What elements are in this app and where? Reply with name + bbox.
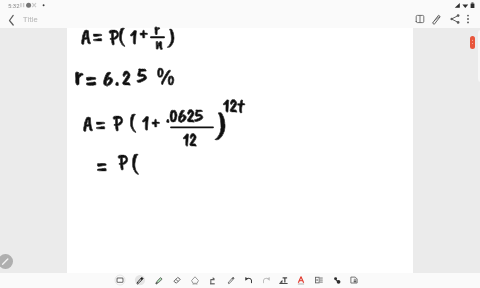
staticText: )	[168, 22, 176, 52]
staticText: r	[154, 18, 160, 39]
button[interactable]: Attach	[431, 13, 443, 25]
button[interactable]: Undo	[242, 273, 256, 287]
staticText: 2	[122, 65, 131, 91]
staticText: 2	[122, 65, 131, 91]
button[interactable]: Insert space	[113, 273, 127, 287]
staticText: r	[74, 58, 84, 92]
staticText: )	[216, 102, 227, 147]
staticText: (	[118, 23, 124, 49]
button[interactable]: Select shape	[188, 273, 202, 287]
button[interactable]: Shapes	[330, 273, 344, 287]
staticText: 5	[137, 62, 147, 90]
staticText: 1	[142, 110, 150, 136]
button[interactable]: More options	[462, 13, 474, 25]
button[interactable]: Page layout	[414, 13, 426, 25]
staticText: 12t	[223, 94, 245, 118]
staticText: +	[151, 111, 161, 134]
button[interactable]: Eraser	[170, 273, 184, 287]
staticText: =	[97, 149, 107, 181]
staticText: A	[83, 111, 93, 137]
staticText: +	[139, 22, 149, 45]
staticText: A	[81, 24, 91, 50]
staticText: =	[86, 61, 97, 95]
staticText: =	[86, 61, 97, 95]
staticText: .0625	[166, 104, 203, 128]
button[interactable]: Shape tool	[206, 273, 220, 287]
staticText: =	[96, 108, 106, 138]
staticText: n	[155, 31, 163, 54]
staticText: A	[83, 111, 93, 137]
staticText: n	[155, 31, 163, 54]
staticText: (	[118, 23, 124, 49]
staticText: P	[118, 149, 128, 175]
staticText: )	[216, 102, 227, 147]
staticText: .0625	[166, 104, 203, 128]
staticText: 12t	[223, 94, 245, 118]
staticText: =	[96, 108, 106, 138]
staticText: 1	[142, 110, 150, 136]
staticText: 6	[103, 65, 114, 93]
staticText: r	[74, 58, 84, 92]
button[interactable]: Pen 2	[224, 273, 238, 287]
button[interactable]: Text format	[277, 273, 291, 287]
staticText: 1	[130, 24, 138, 50]
button[interactable]: Insert	[312, 273, 326, 287]
staticText: A	[81, 24, 91, 50]
staticText: (	[131, 149, 138, 178]
staticText: +	[139, 22, 149, 45]
staticText: r	[154, 18, 160, 39]
button[interactable]: Lock	[347, 273, 361, 287]
staticText: .	[115, 65, 120, 91]
button[interactable]: Text colour	[294, 273, 308, 287]
staticText: P	[118, 149, 128, 175]
button[interactable]: Pen	[133, 273, 147, 287]
button[interactable]: Redo	[259, 273, 273, 287]
staticText: P	[109, 24, 119, 50]
staticText: 5	[137, 62, 147, 90]
staticText: P	[113, 110, 123, 136]
staticText: %	[156, 61, 176, 91]
button[interactable]: Back	[3, 12, 20, 29]
button[interactable]: Highlighter	[152, 273, 166, 287]
staticText: 12	[183, 129, 197, 152]
button[interactable]: Open drawer	[470, 36, 475, 49]
button[interactable]: Share	[449, 13, 461, 25]
staticText: P	[113, 110, 123, 136]
staticText: (	[129, 109, 135, 135]
staticText: (	[131, 149, 138, 178]
staticText: =	[93, 20, 103, 50]
button[interactable]: Pen tool	[0, 254, 13, 269]
staticText: )	[168, 22, 176, 52]
staticText: %	[156, 61, 176, 91]
staticText: .	[115, 65, 120, 91]
staticText: 12	[183, 129, 197, 152]
staticText: +	[151, 111, 161, 134]
button[interactable]: Title	[23, 15, 38, 24]
staticText: =	[97, 149, 107, 181]
staticText: =	[93, 20, 103, 50]
staticText: 6	[103, 65, 114, 93]
staticText: (	[129, 109, 135, 135]
staticText: 5:32	[8, 2, 20, 9]
staticText: 1	[130, 24, 138, 50]
staticText: P	[109, 24, 119, 50]
